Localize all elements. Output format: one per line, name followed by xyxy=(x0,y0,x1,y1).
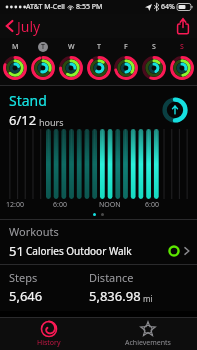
button[interactable]: 51 xyxy=(9,242,190,260)
staticText: 6:00 xyxy=(145,200,159,210)
staticText: History xyxy=(37,338,61,348)
staticText: Steps xyxy=(9,270,38,285)
staticText: 5,836.98 xyxy=(89,287,141,305)
button[interactable]: Day 4 activity xyxy=(86,55,112,81)
staticText: 64% xyxy=(161,2,175,12)
button[interactable]: Steps xyxy=(9,270,89,305)
staticText: T xyxy=(41,42,45,52)
button[interactable]: Share xyxy=(169,14,197,38)
staticText: F xyxy=(124,42,128,52)
button[interactable]: Achievements xyxy=(98,318,197,350)
staticText: AT&T M-Cell xyxy=(26,2,65,12)
button[interactable]: Day 6 activity xyxy=(141,55,167,81)
staticText: Workouts xyxy=(9,224,59,239)
staticText: Achievements xyxy=(125,338,171,348)
staticText: S xyxy=(152,42,156,52)
staticText: T xyxy=(97,42,101,52)
staticText: Calories Outdoor Walk xyxy=(26,244,132,258)
staticText: July xyxy=(17,17,41,36)
button[interactable]: Distance xyxy=(89,270,188,305)
button[interactable]: Stand xyxy=(0,86,197,129)
staticText: Stand xyxy=(9,91,47,110)
staticText: 12:00 xyxy=(6,200,24,210)
staticText: W xyxy=(68,42,75,52)
button[interactable]: Day 1 activity xyxy=(2,55,28,81)
staticText: 6/12 xyxy=(9,111,37,129)
staticText: M xyxy=(12,42,19,52)
staticText: S xyxy=(180,42,184,52)
staticText: Distance xyxy=(89,270,134,285)
button[interactable]: History xyxy=(0,318,98,350)
button[interactable]: Day 2 activity xyxy=(30,55,56,81)
staticText: 51 xyxy=(9,242,24,260)
staticText: mi xyxy=(143,293,153,304)
button[interactable]: Day 5 activity xyxy=(113,55,139,81)
staticText: 8:55 PM xyxy=(76,2,103,12)
staticText: NOON xyxy=(99,200,121,210)
button[interactable]: Day 3 activity xyxy=(58,55,84,81)
button[interactable]: Day 7 activity xyxy=(169,55,195,81)
staticText: 5,646 xyxy=(9,287,43,305)
staticText: hours xyxy=(39,116,64,128)
button[interactable]: July xyxy=(0,14,47,38)
staticText: 6:00 xyxy=(53,200,67,210)
